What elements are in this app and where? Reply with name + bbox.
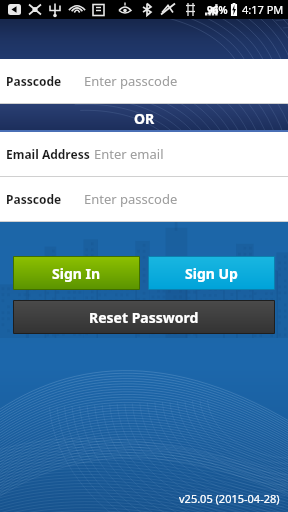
staticText: Enter email	[94, 145, 164, 163]
button[interactable]: Reset Password	[14, 301, 274, 333]
staticText: Enter passcode	[84, 190, 178, 208]
staticText: Reset Password	[89, 308, 199, 327]
staticText: 4:17 PM	[242, 2, 284, 17]
staticText: Passcode	[6, 73, 62, 89]
staticText: Enter passcode	[84, 72, 178, 90]
staticText: Sign Up	[185, 264, 238, 283]
button[interactable]: Email Address	[0, 132, 288, 177]
staticText: v25.05 (2015-04-28)	[179, 491, 280, 506]
staticText: 96%	[207, 3, 228, 17]
button[interactable]: Passcode	[0, 177, 288, 222]
staticText: OR	[134, 109, 155, 128]
button[interactable]: Sign In	[14, 257, 139, 289]
staticText: Sign In	[52, 264, 101, 283]
button[interactable]: Sign Up	[149, 257, 274, 289]
staticText: Email Address	[6, 146, 90, 162]
button[interactable]: Passcode	[0, 59, 288, 104]
staticText: Passcode	[6, 191, 62, 207]
